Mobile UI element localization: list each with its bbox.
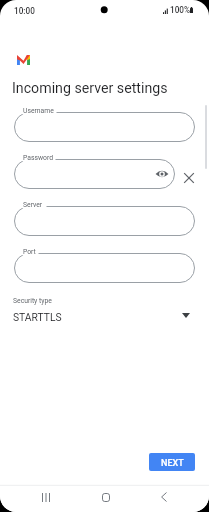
button[interactable]: Home: [94, 487, 117, 507]
button[interactable]: Back: [152, 487, 175, 507]
button[interactable]: Clear password: [182, 171, 196, 185]
button[interactable]: Show password: [155, 169, 169, 179]
button[interactable]: [14, 112, 195, 142]
staticText: Port: [23, 248, 36, 256]
staticText: STARTTLS: [13, 311, 62, 323]
button[interactable]: [14, 253, 195, 283]
staticText: NEXT: [161, 458, 184, 469]
staticText: Username: [23, 107, 54, 115]
button[interactable]: NEXT: [149, 453, 195, 471]
staticText: Incoming server settings: [12, 80, 168, 97]
button[interactable]: [14, 206, 195, 236]
staticText: 10:00: [14, 6, 35, 16]
staticText: Security type: [13, 297, 52, 305]
staticText: Server: [23, 201, 43, 209]
button[interactable]: Security type: [0, 294, 209, 328]
button[interactable]: Recent apps: [34, 487, 57, 507]
button[interactable]: Show password: [14, 159, 175, 189]
staticText: Password: [23, 154, 54, 162]
staticText: 100%: [170, 5, 190, 15]
